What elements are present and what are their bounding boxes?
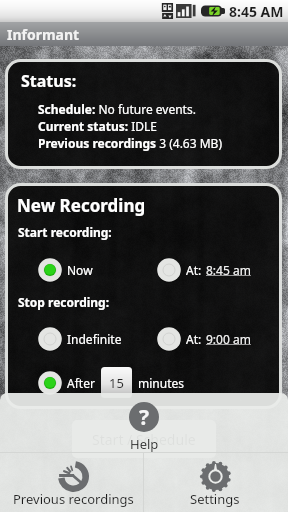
staticText: At: [186,331,202,347]
staticText: Previous recordings 3 (4.63 MB) [38,135,222,151]
button[interactable]: Help [0,393,288,452]
button[interactable]: Previous recordings [0,453,143,512]
staticText: ? [139,403,150,432]
staticText: At: [186,262,202,278]
staticText: 8:45 am [206,262,251,278]
staticText: Help [130,435,159,453]
button[interactable]: At: [157,258,251,282]
staticText: Informant [7,25,80,44]
staticText: After [67,375,95,391]
staticText: minutes [138,375,184,391]
staticText: Now [67,262,93,278]
staticText: Indefinite [67,331,122,347]
staticText: Settings [190,490,240,508]
button[interactable]: Settings [144,453,288,512]
button[interactable]: Now [38,258,93,282]
button[interactable]: Start / Schedule [72,420,216,458]
staticText: Schedule: No future events. [38,101,196,117]
staticText: Start recording: [18,224,112,240]
button[interactable]: After [38,371,95,395]
staticText: New Recording [17,194,146,217]
staticText: 15 [109,374,124,392]
staticText: Previous recordings [13,490,134,508]
staticText: Status: [21,70,77,92]
button[interactable]: 15 [101,367,132,398]
staticText: Start / Schedule [92,430,196,449]
staticText: 8:45 AM [229,2,284,21]
button[interactable]: At: [157,327,251,351]
staticText: Current status: IDLE [38,118,158,134]
button[interactable]: Indefinite [38,327,122,351]
staticText: 9:00 am [206,331,251,347]
staticText: Stop recording: [18,294,110,310]
